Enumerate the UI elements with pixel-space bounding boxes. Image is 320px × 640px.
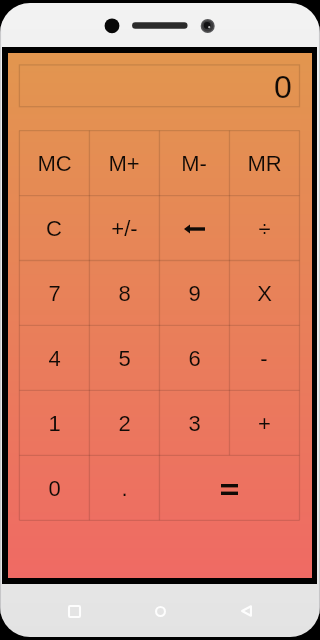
button[interactable]: 9: [159, 261, 229, 326]
staticText: C: [46, 216, 62, 241]
button[interactable]: Equals: [159, 456, 299, 521]
button[interactable]: Home: [136, 587, 184, 635]
button[interactable]: 2: [89, 391, 159, 456]
staticText: 8: [118, 281, 131, 306]
button[interactable]: Backspace: [159, 196, 229, 261]
staticText: 5: [118, 346, 131, 371]
button[interactable]: Back: [222, 587, 270, 635]
button[interactable]: 0: [19, 456, 89, 521]
staticText: MC: [37, 151, 72, 176]
staticText: 7: [48, 281, 61, 306]
staticText: ÷: [258, 216, 271, 241]
staticText: 4: [48, 346, 61, 371]
button[interactable]: C: [19, 196, 89, 261]
staticText: 2: [118, 411, 131, 436]
button[interactable]: 7: [19, 261, 89, 326]
staticText: X: [257, 281, 272, 306]
staticText: 0: [48, 476, 61, 501]
other: Equals: [159, 456, 299, 521]
button[interactable]: 5: [89, 326, 159, 391]
staticText: M+: [108, 151, 140, 176]
button[interactable]: ÷: [229, 196, 299, 261]
staticText: .: [121, 476, 128, 501]
staticText: +/-: [111, 216, 138, 241]
button[interactable]: 8: [89, 261, 159, 326]
staticText: 9: [188, 281, 201, 306]
button[interactable]: .: [89, 456, 159, 521]
button[interactable]: +/-: [89, 196, 159, 261]
button[interactable]: X: [229, 261, 299, 326]
staticText: MR: [247, 151, 282, 176]
staticText: 3: [188, 411, 201, 436]
button[interactable]: 3: [159, 391, 229, 456]
staticText: 1: [48, 411, 61, 436]
button[interactable]: MC: [19, 131, 89, 196]
button[interactable]: -: [229, 326, 299, 391]
staticText: 0: [274, 69, 292, 105]
button[interactable]: Recent apps: [50, 587, 98, 635]
staticText: 6: [188, 346, 201, 371]
staticText: M-: [181, 151, 207, 176]
button[interactable]: 1: [19, 391, 89, 456]
button[interactable]: 0: [19, 65, 299, 107]
button[interactable]: MR: [229, 131, 299, 196]
button[interactable]: 4: [19, 326, 89, 391]
button[interactable]: M+: [89, 131, 159, 196]
button[interactable]: +: [229, 391, 299, 456]
button[interactable]: M-: [159, 131, 229, 196]
staticText: +: [258, 411, 271, 436]
other: Backspace: [159, 196, 229, 261]
staticText: -: [260, 346, 268, 371]
button[interactable]: 6: [159, 326, 229, 391]
